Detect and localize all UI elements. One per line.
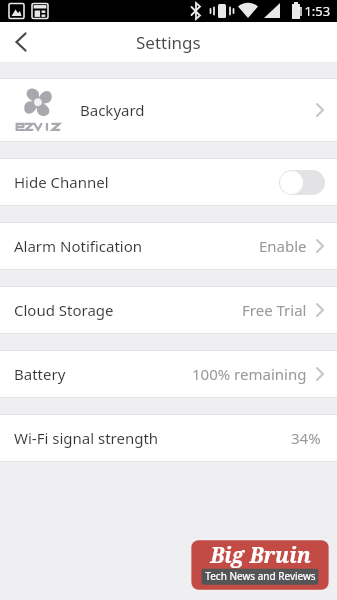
staticText: 11:53	[297, 2, 331, 20]
staticText: Free Trial	[242, 300, 307, 320]
button[interactable]: Backyard	[0, 79, 337, 141]
button[interactable]: Alarm Notification	[0, 223, 337, 269]
staticText: Wi-Fi signal strength	[14, 428, 159, 448]
button[interactable]: Cloud Storage	[0, 287, 337, 333]
button[interactable]: Hide Channel toggle	[279, 170, 325, 195]
staticText: Cloud Storage	[14, 300, 114, 320]
button[interactable]: Back	[0, 22, 44, 62]
staticText: Enable	[259, 236, 307, 256]
staticText: Backyard	[80, 100, 145, 120]
staticText: Settings	[136, 31, 201, 54]
staticText: Big Bruin	[210, 541, 311, 570]
button[interactable]: Hide Channel	[0, 159, 337, 205]
staticText: 100% remaining	[192, 364, 307, 384]
staticText: Tech News and Reviews	[205, 569, 316, 583]
button[interactable]: Wi-Fi signal strength	[0, 415, 337, 461]
staticText: Hide Channel	[14, 172, 109, 192]
staticText: 34%	[291, 428, 321, 448]
button[interactable]: Battery	[0, 351, 337, 397]
staticText: Battery	[14, 364, 66, 384]
staticText: Alarm Notification	[14, 236, 143, 256]
